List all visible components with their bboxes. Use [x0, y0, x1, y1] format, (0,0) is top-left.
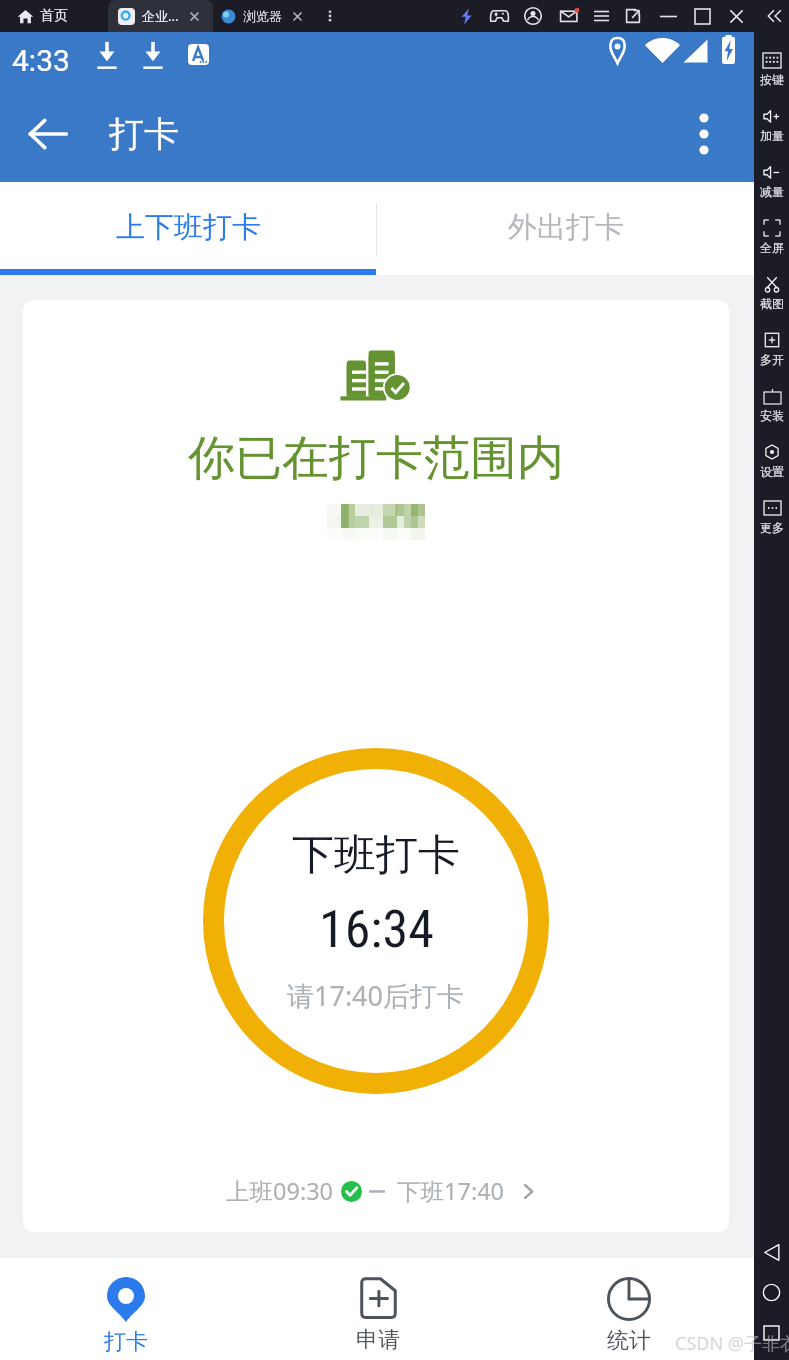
button[interactable]: 全屏	[754, 219, 789, 269]
staticText: 打卡	[109, 112, 179, 156]
staticText: 你已在打卡范围内	[188, 429, 564, 488]
staticText: 多开	[760, 352, 784, 367]
button[interactable]: Recents	[754, 1315, 789, 1350]
staticText: 下班打卡	[292, 829, 460, 882]
button[interactable]: More options	[654, 85, 754, 182]
button[interactable]: 统计	[503, 1258, 754, 1360]
staticText: 更多	[760, 520, 784, 535]
button[interactable]	[758, 0, 789, 32]
button[interactable]: 减量	[754, 163, 789, 213]
button[interactable]	[652, 0, 684, 32]
button[interactable]: 企业...	[108, 0, 213, 32]
button[interactable]: 按键	[754, 51, 789, 101]
staticText: CSDN @子非衣	[675, 1331, 789, 1356]
staticText: 设置	[760, 464, 784, 479]
button[interactable]	[585, 0, 617, 32]
button[interactable]	[686, 0, 718, 32]
staticText: 申请	[356, 1326, 400, 1354]
staticText: 下班17:40	[397, 1175, 505, 1207]
staticText: 浏览器	[243, 8, 282, 24]
staticText: 打卡	[104, 1328, 148, 1356]
button[interactable]: 多开	[754, 331, 789, 381]
button[interactable]: 申请	[252, 1258, 503, 1360]
staticText: 按键	[760, 72, 784, 87]
button[interactable]: 截图	[754, 275, 789, 325]
button[interactable]: Home	[754, 1275, 789, 1310]
staticText: 全屏	[760, 240, 784, 255]
button[interactable]: 设置	[754, 443, 789, 493]
button[interactable]	[517, 0, 549, 32]
staticText: 减量	[760, 184, 784, 199]
staticText: 截图	[760, 296, 784, 311]
button[interactable]	[617, 0, 649, 32]
staticText: 上班09:30	[226, 1175, 334, 1207]
staticText: 上下班打卡	[116, 209, 261, 246]
button[interactable]	[720, 0, 752, 32]
button[interactable]: Back	[754, 1235, 789, 1270]
staticText: 统计	[607, 1327, 651, 1355]
staticText: 16:34	[319, 899, 434, 960]
button[interactable]	[553, 0, 585, 32]
button[interactable]	[483, 0, 515, 32]
staticText: 首页	[40, 7, 68, 25]
staticText: 外出打卡	[508, 209, 624, 246]
button[interactable]: 安装	[754, 387, 789, 437]
button[interactable]: 外出打卡	[377, 182, 754, 275]
staticText: 加量	[760, 128, 784, 143]
staticText: 请17:40后打卡	[287, 977, 465, 1014]
button[interactable]	[450, 0, 482, 32]
staticText: 安装	[760, 408, 784, 423]
button[interactable]: 上班09:30	[218, 1171, 545, 1211]
button[interactable]: 更多	[754, 499, 789, 549]
staticText: 企业...	[142, 7, 179, 25]
button[interactable]: 加量	[754, 107, 789, 157]
button[interactable]: 打卡	[0, 1258, 252, 1360]
button[interactable]: 上下班打卡	[0, 182, 377, 275]
button[interactable]: Back	[0, 85, 96, 182]
staticText: 4:33	[12, 43, 70, 78]
